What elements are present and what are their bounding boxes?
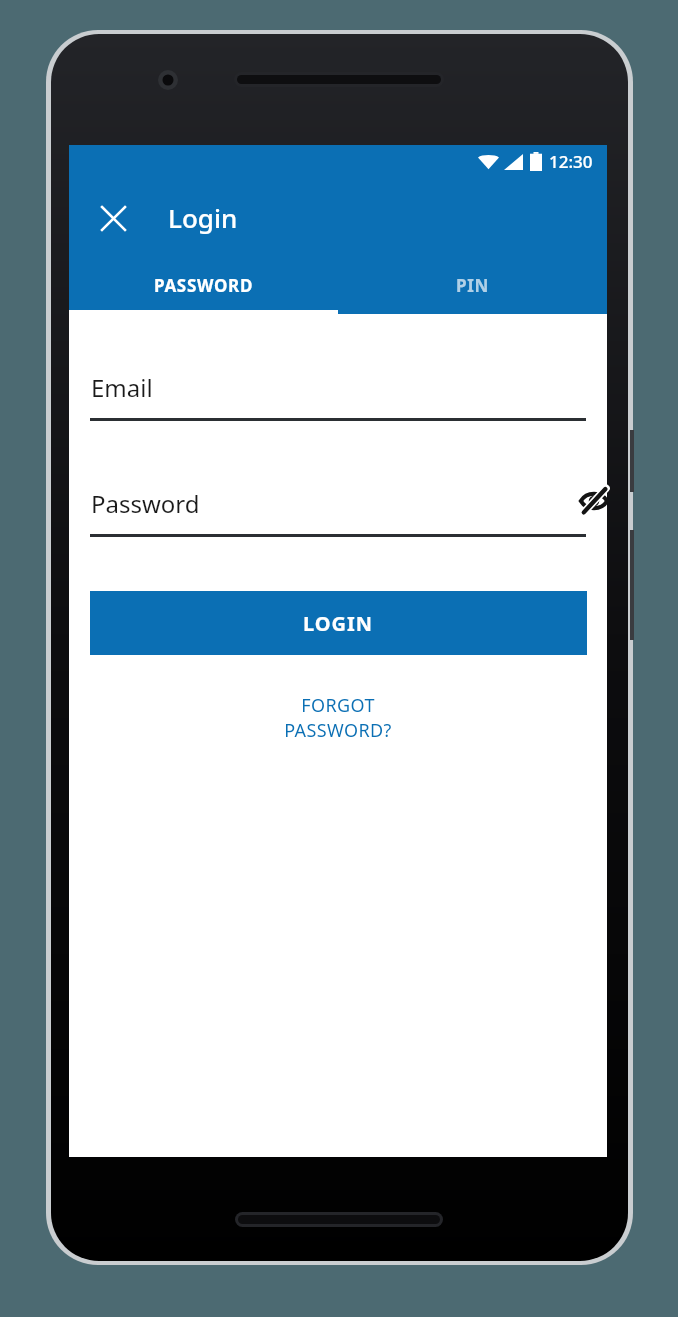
button[interactable]: LOGIN — [90, 591, 587, 655]
staticText: Login — [168, 200, 238, 235]
button[interactable]: Password — [90, 483, 586, 537]
button[interactable]: Close — [85, 190, 141, 246]
button[interactable]: FORGOT PASSWORD? — [248, 693, 428, 737]
staticText: FORGOT PASSWORD? — [248, 693, 428, 737]
button[interactable]: PIN — [338, 257, 607, 314]
button[interactable]: Email — [90, 367, 586, 421]
staticText: PASSWORD — [154, 274, 254, 297]
button[interactable]: Show password — [568, 475, 620, 527]
staticText: 12:30 — [549, 150, 593, 173]
staticText: Email — [91, 371, 153, 404]
staticText: LOGIN — [303, 610, 374, 637]
button[interactable]: PASSWORD — [69, 257, 338, 314]
staticText: PIN — [456, 274, 490, 297]
staticText: Password — [91, 487, 200, 520]
